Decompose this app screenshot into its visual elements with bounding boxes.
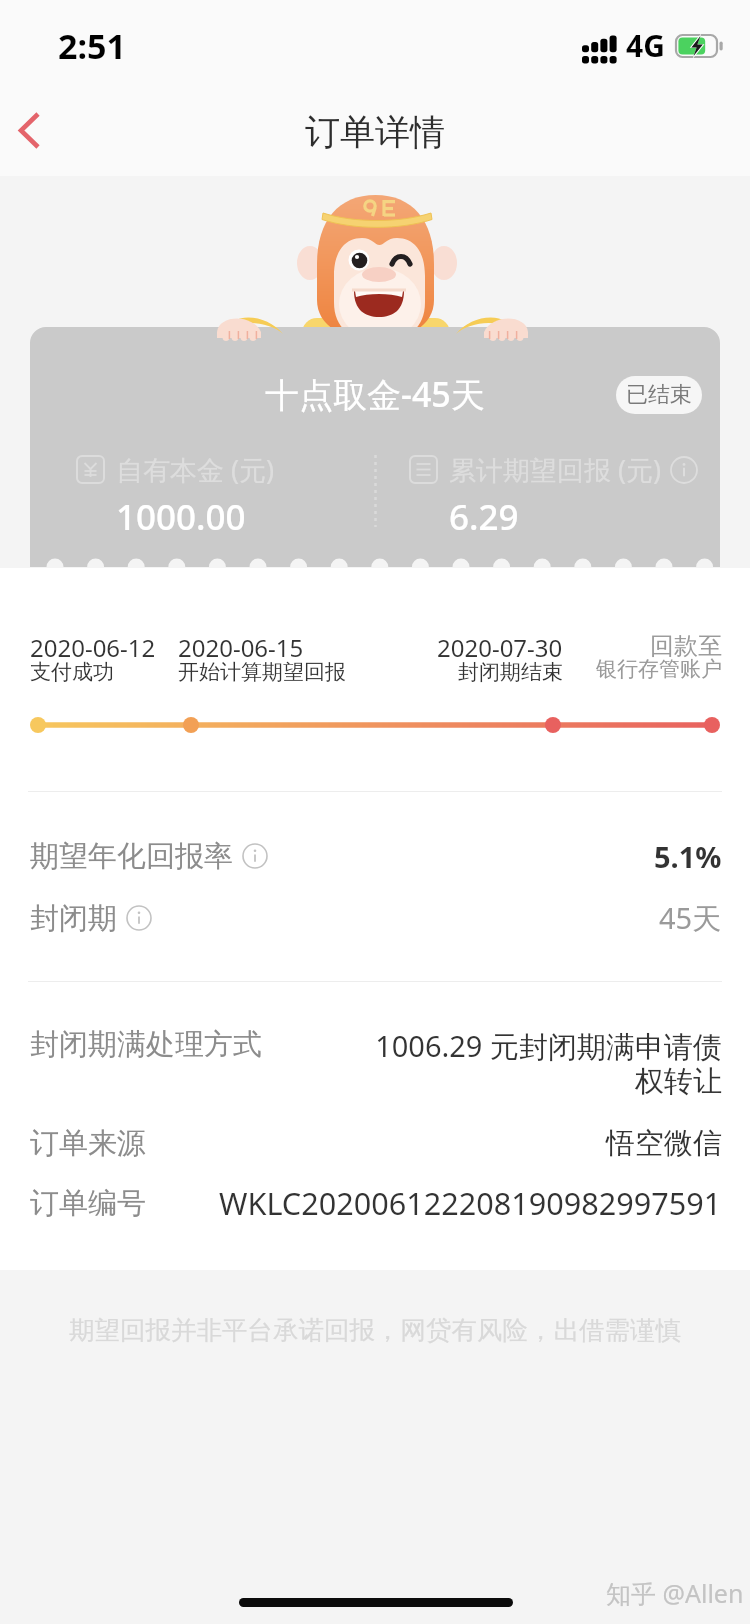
staticText: 1006.29 元封闭期满申请债 权转让 [375,1026,722,1100]
staticText: 2020-07-30 [437,631,563,664]
button[interactable]: 期望年化回报率 [0,825,750,887]
button[interactable]: 封闭期 [0,887,750,949]
staticText: 期望年化回报率 [30,838,233,875]
button[interactable]: Back [0,88,76,176]
staticText: 封闭期结束 [458,659,563,685]
staticText: 自有本金 (元) [116,451,275,488]
staticText: 十点取金-45天 [265,371,485,417]
staticText: 银行存管账户 [596,656,722,682]
button[interactable]: 已结束 [616,376,702,414]
staticText: 支付成功 [30,659,114,685]
staticText: 封闭期满处理方式 [30,1026,262,1063]
staticText: WKLC202006122208190982997591 [219,1182,722,1224]
staticText: 订单详情 [305,110,445,154]
staticText: 累计期望回报 (元) [449,451,662,488]
staticText: 悟空微信 [606,1125,722,1162]
button[interactable]: 封闭期满处理方式 [0,1016,750,1110]
staticText: 2020-06-15 [178,631,304,664]
staticText: 4G [626,25,665,66]
staticText: 开始计算期望回报 [178,659,346,685]
staticText: 2:51 [58,23,126,69]
staticText: 期望回报并非平台承诺回报，网贷有风险，出借需谨慎 [69,1314,681,1346]
staticText: 回款至 [650,631,722,661]
staticText: 知乎 @Allen [606,1576,744,1610]
staticText: 45天 [659,898,722,938]
staticText: 2020-06-12 [30,631,156,664]
staticText: 5.1% [654,837,722,876]
staticText: 已结束 [626,381,692,409]
staticText: 订单来源 [30,1125,146,1162]
staticText: 订单编号 [30,1185,146,1222]
staticText: 6.29 [449,493,519,541]
staticText: 封闭期 [30,900,117,937]
button[interactable]: 订单编号 [0,1172,750,1234]
button[interactable]: 订单来源 [0,1112,750,1174]
staticText: 1000.00 [116,493,246,541]
